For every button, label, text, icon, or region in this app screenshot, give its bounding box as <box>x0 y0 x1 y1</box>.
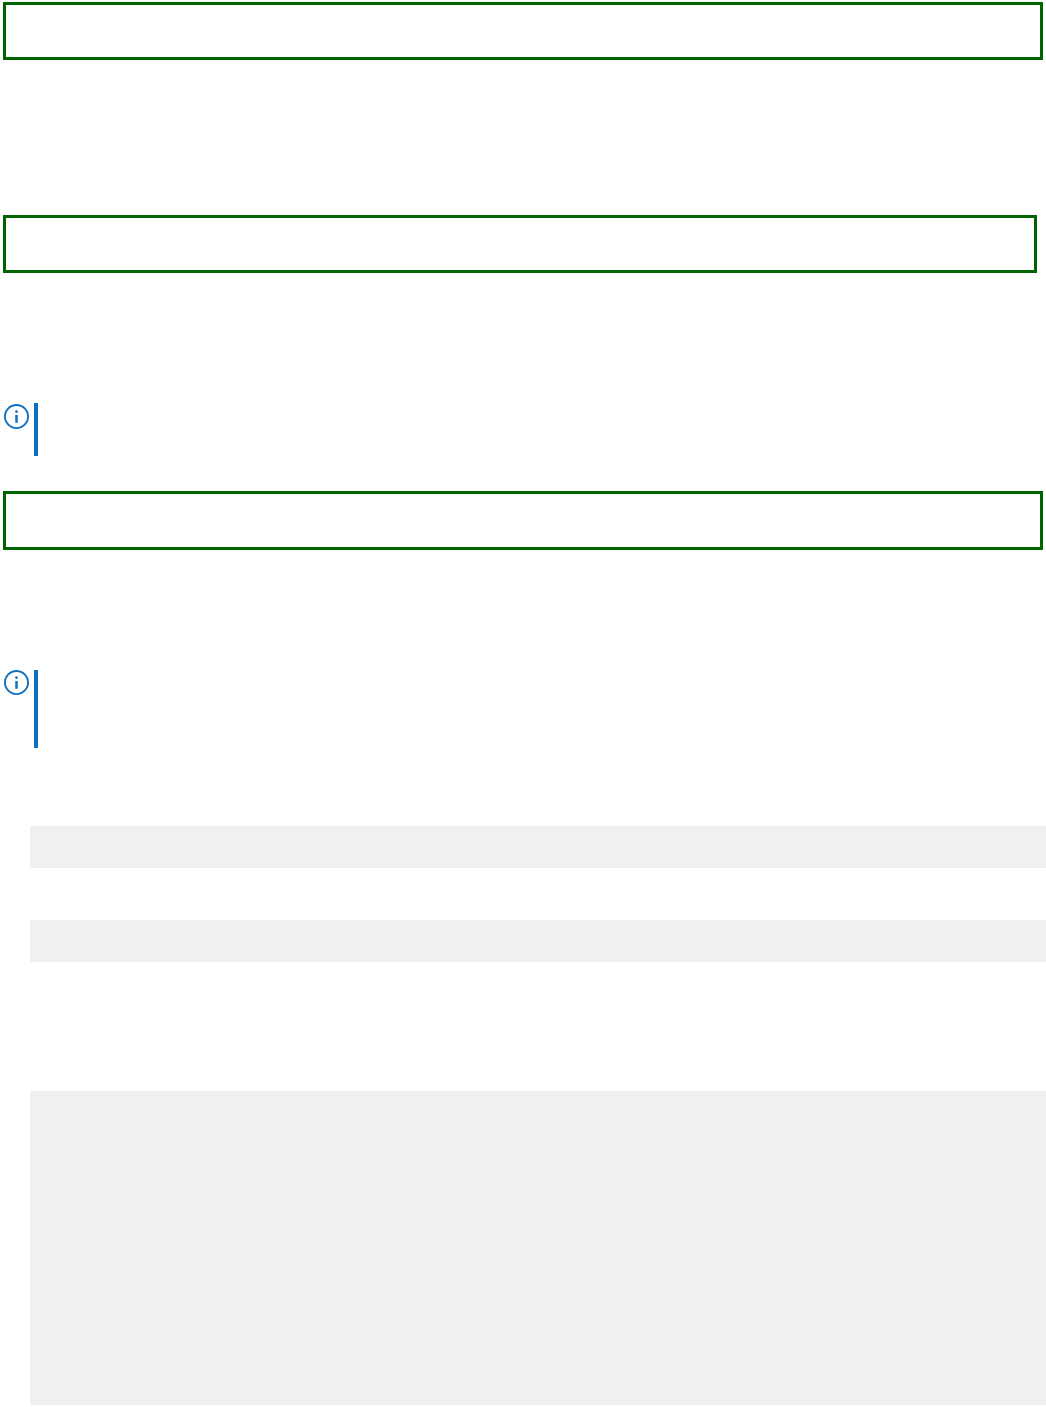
other: Information <box>4 670 29 695</box>
other: Information <box>4 404 29 429</box>
button[interactable]: Information note two <box>0 670 1046 748</box>
button[interactable]: Section three header <box>3 491 1043 550</box>
button[interactable]: Section one header <box>3 2 1043 60</box>
button[interactable]: Information note one <box>0 403 1046 456</box>
button[interactable]: Section two header <box>3 215 1037 273</box>
